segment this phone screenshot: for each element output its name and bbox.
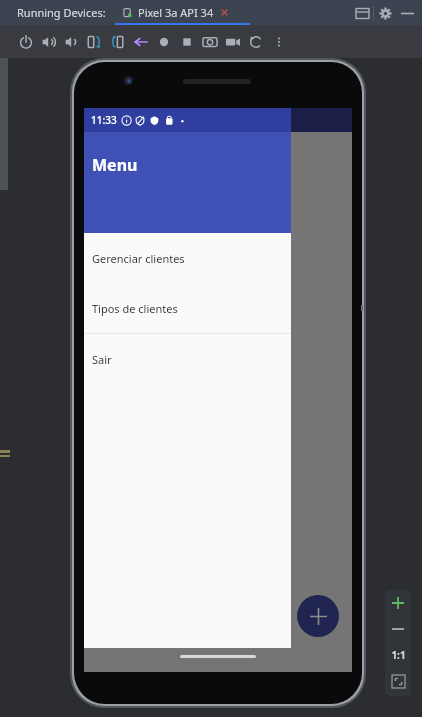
button[interactable]: Sair	[84, 334, 291, 384]
button[interactable]: Power	[14, 30, 37, 53]
staticText: Tipos de clientes	[92, 301, 178, 316]
button[interactable]: Add	[297, 595, 339, 637]
button[interactable]: Rotate right	[106, 30, 129, 53]
button[interactable]: Screenshot	[198, 30, 221, 53]
button[interactable]: Record screen	[221, 30, 244, 53]
staticText: Sair	[92, 352, 112, 367]
staticText: Gerenciar clientes	[92, 251, 185, 266]
button[interactable]: Home	[152, 30, 175, 53]
staticText: Pixel 3a API 34	[138, 5, 214, 20]
staticText: Menu	[92, 154, 138, 176]
button[interactable]: Tipos de clientes	[84, 283, 291, 333]
button[interactable]: Volume down	[60, 30, 83, 53]
other: Close tab	[220, 8, 229, 17]
button[interactable]: More	[267, 30, 290, 53]
staticText: 1:1	[391, 648, 406, 662]
button[interactable]: Minimize	[396, 2, 418, 24]
button[interactable]: Back	[129, 30, 152, 53]
button[interactable]: 1:1	[385, 642, 411, 668]
staticText: 11:33	[91, 113, 117, 127]
button[interactable]: Zoom out	[385, 616, 411, 642]
button[interactable]: Overview	[175, 30, 198, 53]
staticText: Running Devices:	[17, 5, 106, 20]
button[interactable]: Gerenciar clientes	[84, 233, 291, 283]
button[interactable]: Settings	[374, 2, 396, 24]
button[interactable]: Zoom in	[385, 590, 411, 616]
button[interactable]: Split window	[351, 2, 373, 24]
button[interactable]: Pixel 3a API 34	[122, 5, 229, 20]
button[interactable]: Rotate left	[83, 30, 106, 53]
button[interactable]: History	[244, 30, 267, 53]
button[interactable]: Volume up	[37, 30, 60, 53]
button[interactable]: Fit to screen	[385, 668, 411, 694]
